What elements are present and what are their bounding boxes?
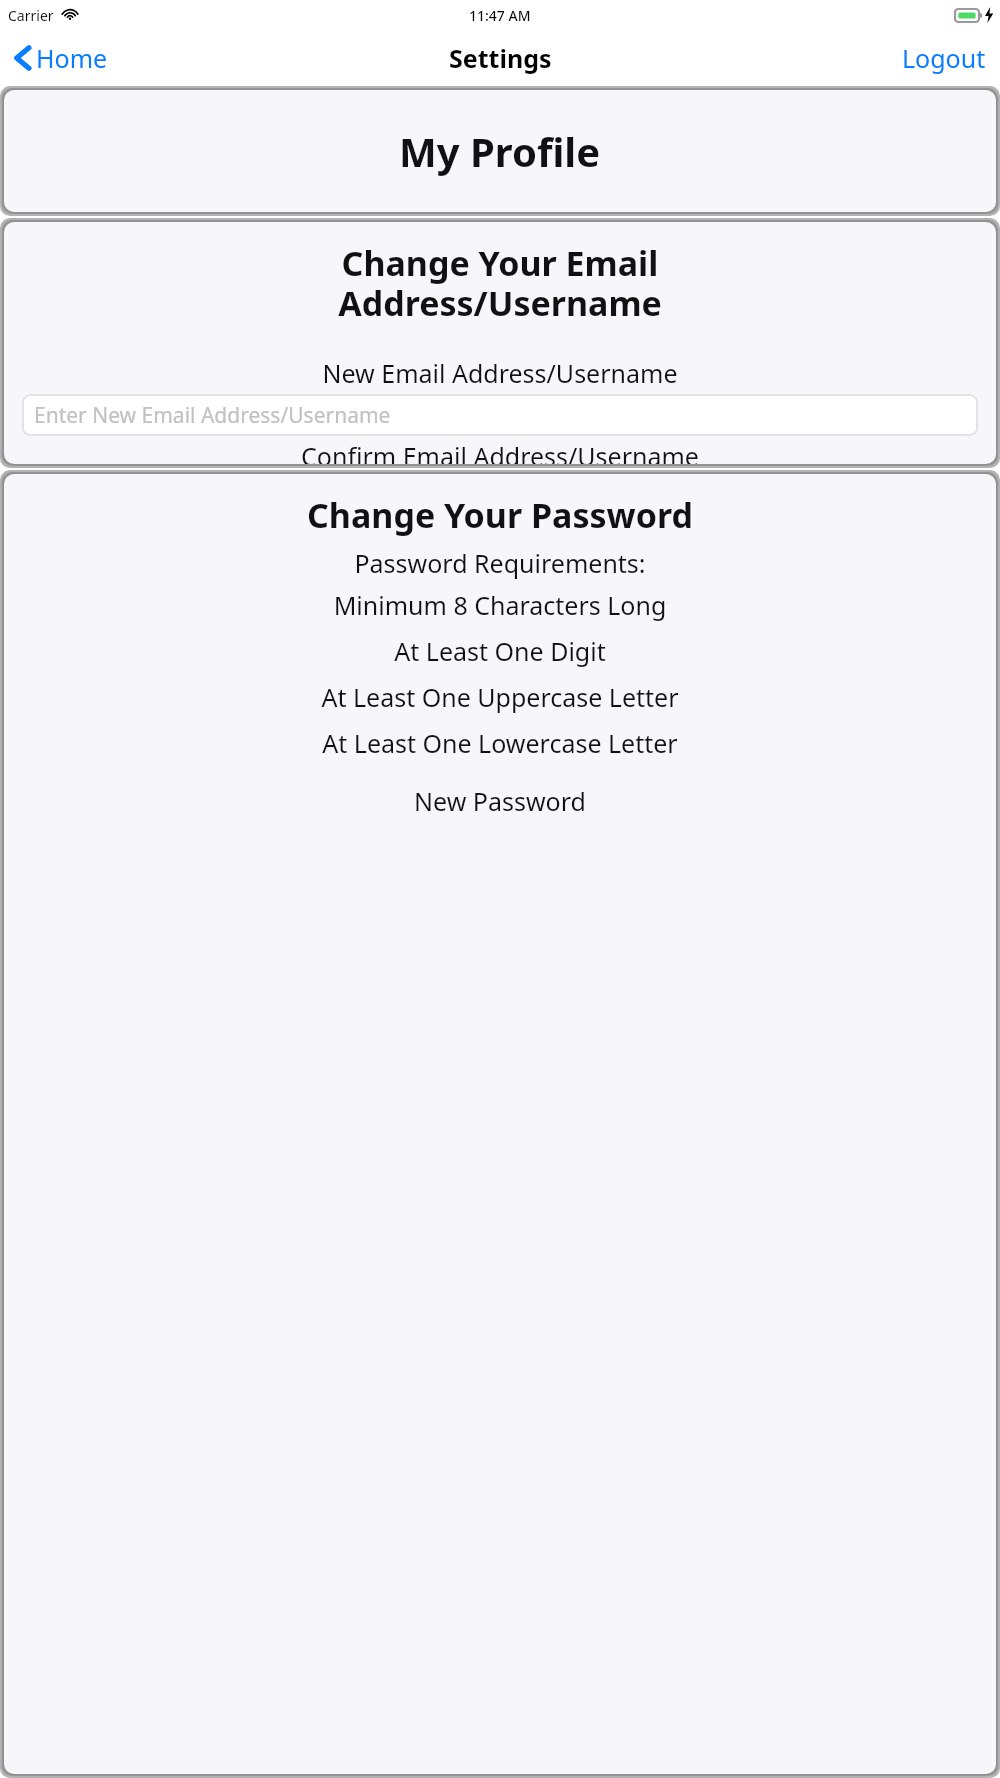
- staticText: Carrier: [8, 6, 54, 25]
- staticText: At Least One Lowercase Letter: [20, 726, 980, 760]
- staticText: New Password: [20, 784, 980, 818]
- staticText: Home: [36, 41, 108, 75]
- button[interactable]: Logout: [888, 33, 1000, 83]
- staticText: Change Your Password: [20, 492, 980, 538]
- staticText: At Least One Digit: [20, 634, 980, 668]
- staticText: 11:47 AM: [469, 6, 531, 25]
- staticText: My Profile: [399, 124, 601, 178]
- staticText: At Least One Uppercase Letter: [20, 680, 980, 714]
- staticText: Enter New Email Address/Username: [34, 401, 391, 430]
- button[interactable]: Enter New Email Address/Username: [22, 394, 978, 436]
- staticText: Settings: [449, 41, 552, 75]
- staticText: Minimum 8 Characters Long: [20, 588, 980, 622]
- staticText: Confirm Email Address/Username: [22, 439, 978, 464]
- staticText: Change Your Email Address/Username: [22, 240, 978, 326]
- staticText: Password Requirements:: [20, 546, 980, 580]
- button[interactable]: Home: [0, 35, 120, 81]
- staticText: Logout: [902, 41, 986, 75]
- staticText: New Email Address/Username: [22, 356, 978, 390]
